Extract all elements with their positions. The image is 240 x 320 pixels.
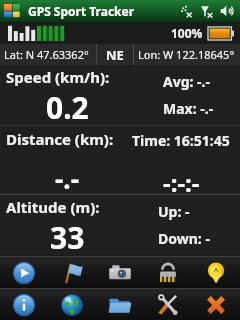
- other: No signal: [200, 5, 213, 18]
- staticText: Up: -: [158, 202, 190, 221]
- button[interactable]: Light: [192, 257, 240, 288]
- staticText: GPS Sport Tracker: [28, 3, 135, 19]
- staticText: 33: [50, 217, 85, 255]
- staticText: Lon: W 122.18645°: [138, 47, 235, 62]
- other: Start: [4, 4, 21, 19]
- staticText: Avg: -.-: [163, 72, 210, 91]
- other: Connectivity off: [179, 4, 193, 18]
- button[interactable]: Lock: [144, 257, 192, 288]
- button[interactable]: Camera: [96, 257, 144, 288]
- other: Volume: [220, 4, 234, 18]
- button[interactable]: Waypoint: [48, 257, 96, 288]
- staticText: 0.2: [46, 87, 89, 125]
- other: Battery full: [208, 27, 234, 40]
- staticText: Distance (km):: [6, 129, 114, 149]
- staticText: 100%: [171, 25, 203, 41]
- button[interactable]: Exit: [192, 289, 240, 320]
- button[interactable]: Start: [0, 257, 48, 288]
- staticText: Lat: N 47.63362°: [4, 47, 89, 62]
- staticText: Down: -: [158, 229, 210, 248]
- staticText: Speed (km/h):: [6, 67, 110, 87]
- staticText: -:-:-: [163, 166, 200, 194]
- button[interactable]: Files: [96, 289, 144, 320]
- staticText: NE: [106, 46, 124, 64]
- button[interactable]: Info: [0, 289, 48, 320]
- button[interactable]: Map: [48, 289, 96, 320]
- staticText: -.-: [55, 161, 79, 194]
- button[interactable]: Settings: [144, 289, 192, 320]
- staticText: Time: 16:51:45: [132, 131, 230, 150]
- staticText: Max: -.-: [163, 99, 214, 118]
- staticText: Altitude (m):: [6, 197, 100, 217]
- other: Satellite signal: [8, 25, 66, 41]
